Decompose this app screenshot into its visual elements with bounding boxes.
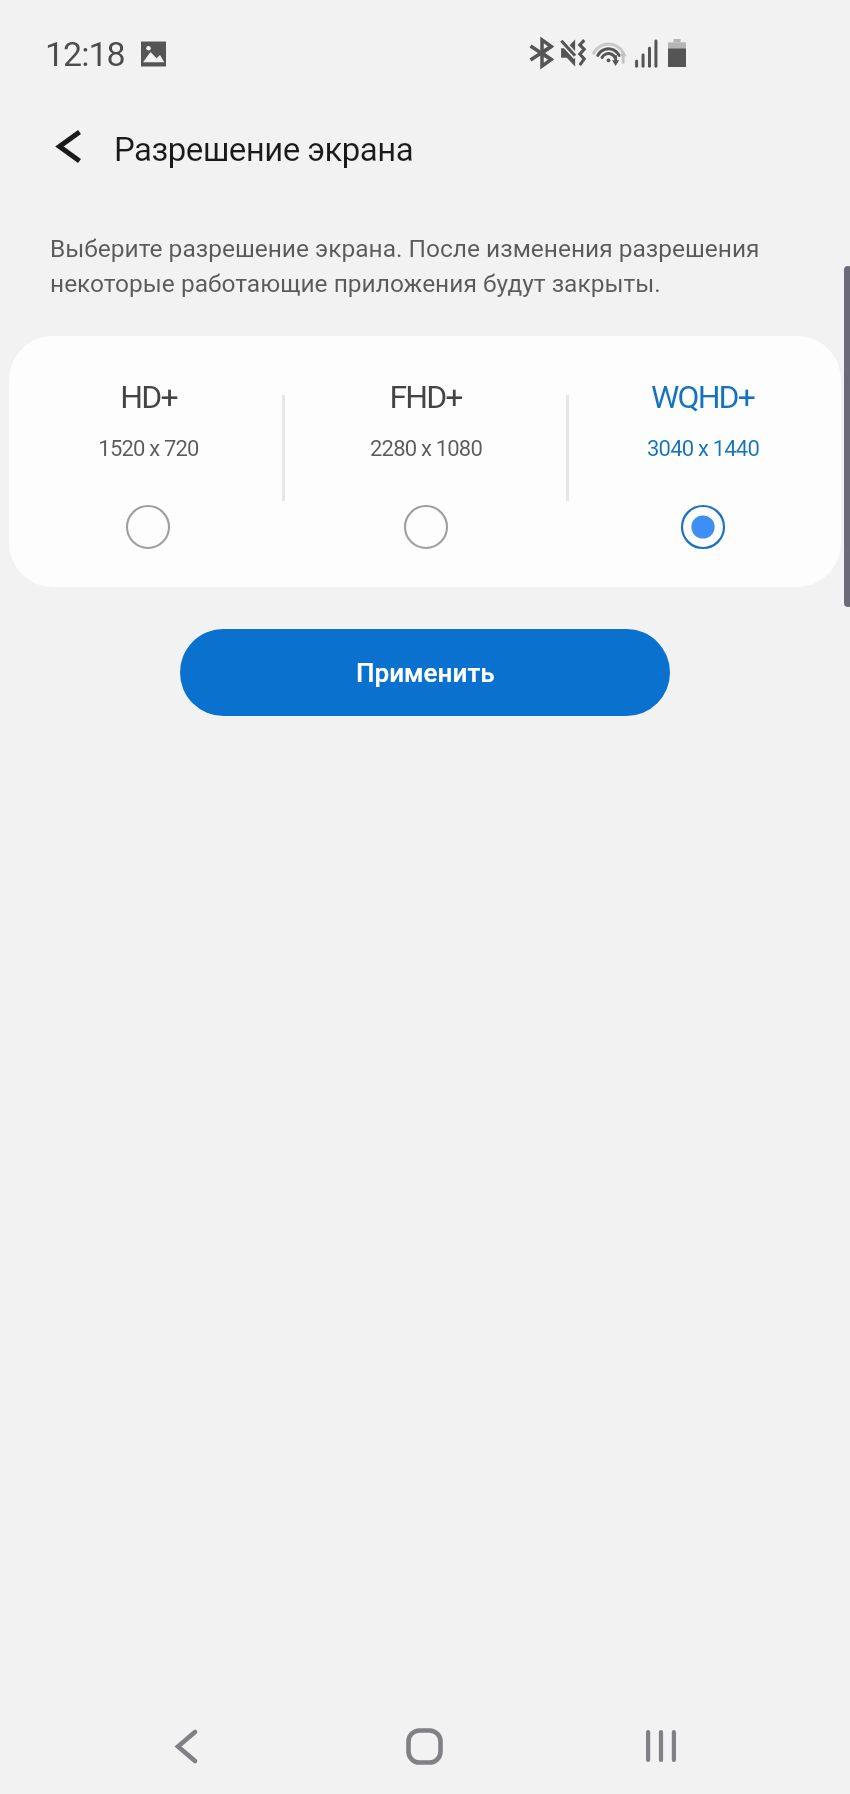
- staticText: 3040 x 1440: [647, 436, 759, 462]
- button[interactable]: HD+: [9, 336, 287, 587]
- staticText: HD+: [120, 378, 177, 416]
- staticText: 12:18: [45, 34, 125, 74]
- staticText: Разрешение экрана: [114, 130, 414, 169]
- staticText: 2280 x 1080: [370, 436, 482, 462]
- button[interactable]: WQHD+: [564, 336, 841, 587]
- button[interactable]: FHD+: [287, 336, 564, 587]
- button[interactable]: Back: [120, 1691, 252, 1794]
- button[interactable]: Применить: [180, 629, 670, 716]
- staticText: Применить: [356, 658, 495, 688]
- button[interactable]: Back: [32, 110, 104, 182]
- button[interactable]: Home: [358, 1691, 490, 1794]
- staticText: WQHD+: [651, 378, 754, 416]
- staticText: 1520 x 720: [98, 436, 199, 462]
- staticText: Выберите разрешение экрана. После измене…: [50, 234, 795, 298]
- staticText: FHD+: [389, 378, 462, 416]
- button[interactable]: Recent apps: [595, 1691, 727, 1794]
